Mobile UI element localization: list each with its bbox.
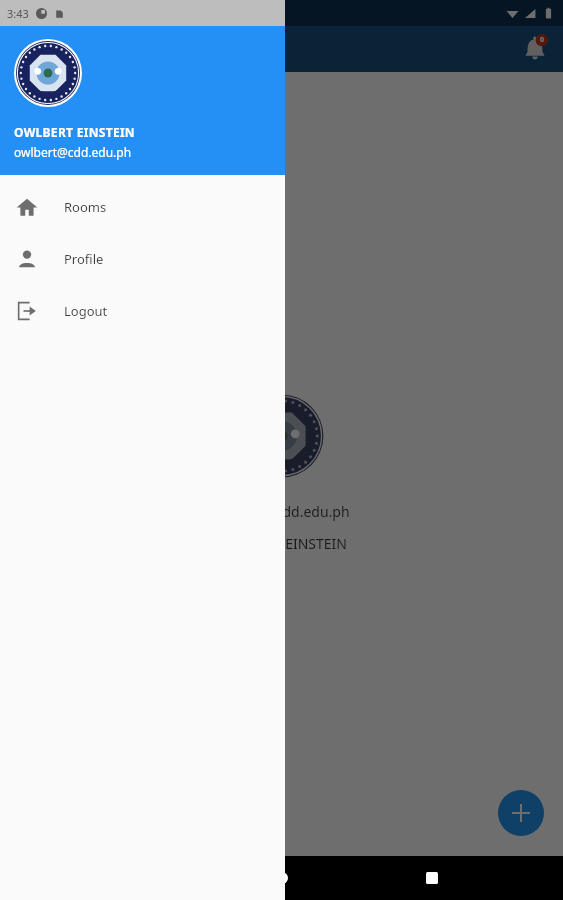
staticText: owlbert@cdd.edu.ph — [14, 144, 132, 160]
staticText: 0 — [540, 35, 545, 45]
button[interactable]: Add — [498, 790, 544, 836]
button[interactable] — [0, 0, 563, 856]
staticText: OWLBERT EINSTEIN — [217, 534, 347, 553]
button[interactable]: Notifications — [517, 31, 553, 67]
staticText: Profile — [64, 250, 104, 268]
button[interactable]: Recents — [412, 858, 452, 898]
staticText: owlbert@cdd.edu.ph — [213, 502, 350, 521]
button[interactable]: Profile — [0, 233, 285, 285]
staticText: OWLBERT EINSTEIN — [14, 124, 135, 140]
staticText: 3:43 — [7, 6, 29, 21]
button[interactable]: Rooms — [0, 181, 285, 233]
button[interactable]: Home — [262, 858, 302, 898]
button[interactable]: Logout — [0, 285, 285, 337]
staticText: Logout — [64, 302, 108, 320]
staticText: Rooms — [64, 198, 107, 216]
